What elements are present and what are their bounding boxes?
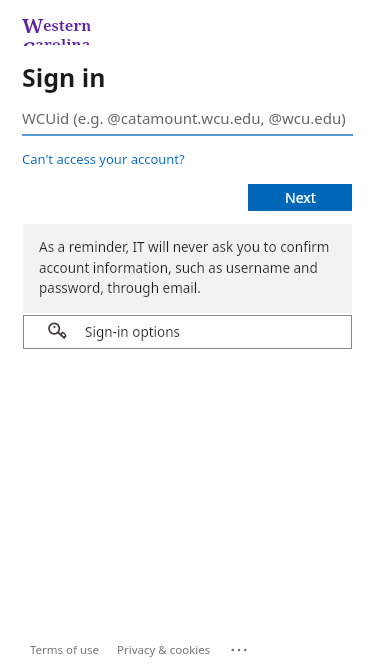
staticText: arolina (35, 34, 91, 45)
staticText: WCUid (e.g. @catamount.wcu.edu, @wcu.edu… (22, 108, 346, 128)
staticText: As a reminder, IT will never ask you to … (39, 238, 338, 297)
button[interactable]: WCUid (e.g. @catamount.wcu.edu, @wcu.edu… (22, 108, 353, 136)
staticText: Can't access your account? (22, 150, 185, 168)
other: Western Carolina University logo (22, 12, 114, 50)
button[interactable]: More options (227, 641, 251, 659)
button[interactable]: Privacy & cookies (117, 639, 211, 661)
staticText: Terms of use (30, 642, 100, 658)
staticText: estern (43, 15, 92, 35)
staticText: C (22, 35, 36, 46)
button[interactable]: Terms of use (30, 639, 100, 661)
staticText: Next (285, 188, 316, 207)
button[interactable]: Sign-in options (23, 315, 352, 349)
staticText: Sign-in options (85, 323, 181, 341)
button[interactable]: Can't access your account? (22, 150, 185, 168)
staticText: W (22, 12, 44, 39)
button[interactable]: Next (248, 184, 352, 211)
staticText: Privacy & cookies (117, 642, 211, 658)
staticText: Sign in (22, 60, 106, 94)
